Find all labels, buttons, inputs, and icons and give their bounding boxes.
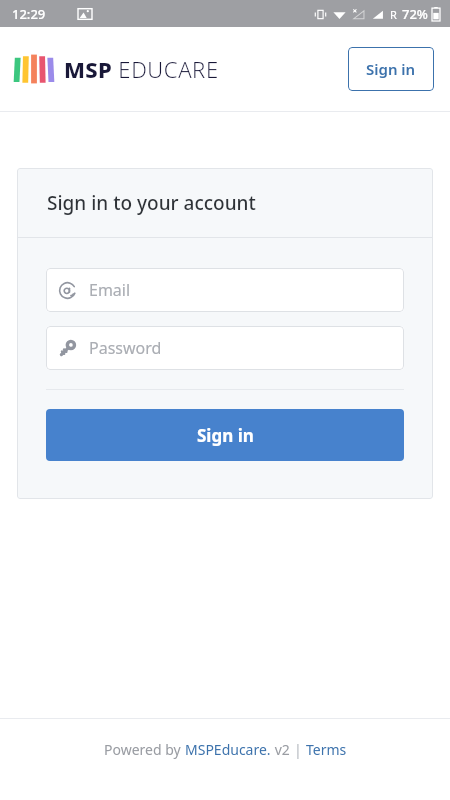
staticText: Sign in to your account (47, 190, 256, 216)
button[interactable]: Password (46, 326, 404, 370)
staticText: Terms (306, 740, 347, 759)
staticText: 12:29 (12, 5, 46, 23)
staticText: R (390, 7, 397, 22)
staticText: Powered by (104, 740, 185, 759)
button[interactable]: Terms (306, 740, 347, 759)
staticText: v2 (271, 740, 294, 759)
staticText: | (294, 740, 306, 759)
staticText: Sign in (366, 59, 416, 79)
staticText: MSP EDUCARE (64, 54, 219, 84)
staticText: Password (89, 337, 162, 359)
staticText: MSPEducare. (185, 740, 271, 759)
staticText: Email (89, 279, 131, 301)
button[interactable]: Sign in (348, 47, 434, 91)
button[interactable]: Email (46, 268, 404, 312)
button[interactable]: MSPEducare. (185, 740, 271, 759)
button[interactable]: Sign in (46, 409, 404, 461)
staticText: Sign in (197, 424, 254, 447)
staticText: 72% (402, 5, 428, 23)
